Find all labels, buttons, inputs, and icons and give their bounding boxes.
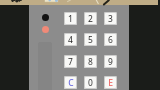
button[interactable]: C (64, 76, 77, 89)
button[interactable]: 1 (64, 12, 77, 25)
staticText: 7 (68, 56, 73, 68)
other: Camera (42, 14, 49, 21)
staticText: 5 (88, 34, 93, 46)
button[interactable]: 9 (104, 55, 117, 68)
button[interactable]: 8 (84, 55, 97, 68)
button[interactable]: 2 (84, 12, 97, 25)
button[interactable]: 4 (64, 33, 77, 46)
staticText: 3 (108, 13, 113, 25)
button[interactable]: 7 (64, 55, 77, 68)
staticText: 4 (68, 34, 73, 46)
staticText: 8 (88, 56, 93, 68)
staticText: 6 (108, 34, 113, 46)
staticText: C (68, 77, 74, 89)
button[interactable]: 5 (84, 33, 97, 46)
button[interactable]: 3 (104, 12, 117, 25)
button[interactable]: 0 (84, 76, 97, 89)
staticText: 1 (68, 13, 73, 25)
button[interactable]: Call (42, 26, 49, 33)
staticText: 9 (108, 56, 113, 68)
staticText: 0 (88, 77, 93, 89)
staticText: 2 (88, 13, 93, 25)
button[interactable]: E (104, 76, 117, 89)
button[interactable]: 6 (104, 33, 117, 46)
staticText: E (108, 77, 113, 89)
